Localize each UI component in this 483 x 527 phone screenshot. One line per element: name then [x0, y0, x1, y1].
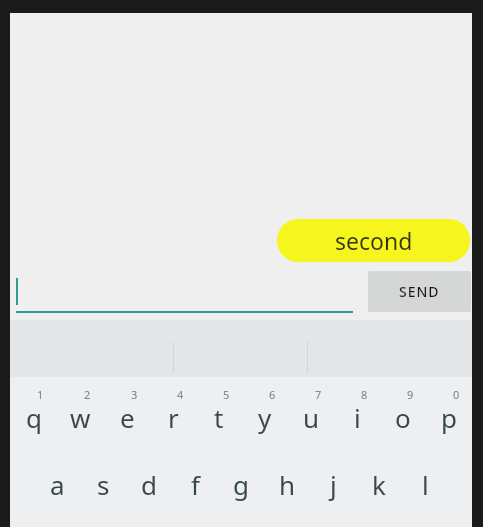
button[interactable]: a: [34, 449, 80, 519]
button[interactable]: 4: [150, 377, 196, 449]
button[interactable]: 8: [334, 377, 380, 449]
staticText: w: [70, 400, 91, 435]
staticText: 3: [131, 387, 138, 402]
staticText: e: [120, 400, 135, 435]
staticText: u: [303, 400, 320, 435]
button[interactable]: SEND: [368, 271, 471, 312]
button[interactable]: f: [172, 449, 218, 519]
button[interactable]: 9: [380, 377, 426, 449]
staticText: p: [441, 400, 457, 435]
button[interactable]: d: [126, 449, 172, 519]
staticText: q: [26, 400, 42, 435]
staticText: l: [422, 467, 429, 502]
button[interactable]: h: [264, 449, 310, 519]
staticText: 0: [453, 387, 460, 402]
staticText: f: [191, 467, 200, 502]
button[interactable]: s: [80, 449, 126, 519]
button[interactable]: 6: [242, 377, 288, 449]
staticText: h: [279, 467, 296, 502]
button[interactable]: k: [356, 449, 402, 519]
staticText: 1: [37, 387, 44, 402]
staticText: second: [335, 225, 413, 256]
staticText: j: [330, 467, 337, 502]
staticText: 5: [223, 387, 230, 402]
button[interactable]: 5: [196, 377, 242, 449]
staticText: 2: [84, 387, 91, 402]
staticText: y: [258, 400, 272, 435]
button[interactable]: 1: [10, 377, 57, 449]
staticText: t: [214, 400, 224, 435]
button[interactable]: Message input field: [16, 272, 353, 313]
staticText: i: [354, 400, 361, 435]
staticText: o: [395, 400, 411, 435]
staticText: 9: [407, 387, 414, 402]
button[interactable]: j: [310, 449, 356, 519]
staticText: s: [97, 467, 110, 502]
button[interactable]: l: [402, 449, 448, 519]
staticText: r: [168, 400, 179, 435]
staticText: 8: [361, 387, 368, 402]
staticText: SEND: [399, 282, 440, 301]
button[interactable]: 7: [288, 377, 334, 449]
button[interactable]: 2: [57, 377, 104, 449]
staticText: 4: [177, 387, 184, 402]
staticText: 7: [315, 387, 322, 402]
button[interactable]: second: [277, 219, 470, 262]
staticText: g: [233, 467, 249, 502]
button[interactable]: 3: [104, 377, 150, 449]
staticText: 6: [269, 387, 276, 402]
button[interactable]: 0: [426, 377, 472, 449]
staticText: a: [50, 467, 65, 502]
staticText: k: [372, 467, 386, 502]
staticText: d: [141, 467, 157, 502]
button[interactable]: g: [218, 449, 264, 519]
